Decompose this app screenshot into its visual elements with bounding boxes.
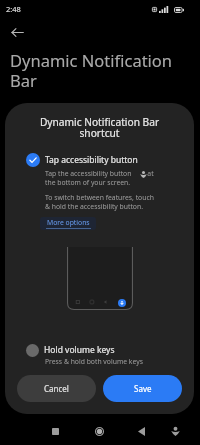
button[interactable]: Accessibility: [165, 421, 186, 442]
staticText: Cancel: [44, 383, 69, 394]
staticText: More options: [47, 218, 90, 227]
button[interactable]: Home: [89, 421, 110, 442]
button[interactable]: Back: [7, 22, 27, 42]
staticText: Tap accessibility button: [45, 154, 138, 166]
button[interactable]: Tap accessibility button: [5, 149, 194, 171]
staticText: Dynamic Notification Bar shortcut: [29, 115, 170, 140]
staticText: Tap the accessibility button at the bott…: [45, 169, 154, 187]
staticText: 2:48: [6, 4, 21, 14]
staticText: Dynamic Notification Bar: [10, 49, 182, 92]
staticText: Press & hold both volume keys: [45, 357, 143, 366]
staticText: To switch between features, touch & hold…: [45, 193, 154, 211]
button[interactable]: Save: [103, 375, 182, 402]
button[interactable]: Hold volume keys: [5, 339, 194, 361]
button[interactable]: Back: [131, 421, 152, 442]
button[interactable]: Cancel: [17, 375, 96, 402]
staticText: Save: [134, 383, 152, 394]
button[interactable]: More options: [40, 217, 96, 230]
button[interactable]: Recents: [45, 421, 66, 442]
staticText: Hold volume keys: [44, 344, 115, 356]
